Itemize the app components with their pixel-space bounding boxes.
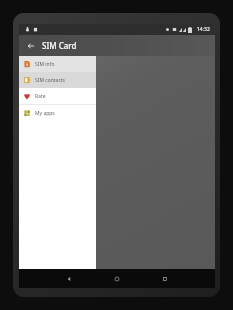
staticText: Rate — [35, 93, 46, 100]
button[interactable]: My apps — [19, 105, 96, 121]
button[interactable]: Rate — [19, 88, 96, 104]
button[interactable]: Back — [53, 269, 85, 288]
staticText: My apps — [35, 110, 55, 117]
button[interactable]: Recent apps — [149, 269, 181, 288]
button[interactable]: SIM contacts — [19, 72, 96, 88]
staticText: SIM Card — [42, 40, 77, 51]
button[interactable]: Navigate up — [23, 38, 39, 54]
staticText: SIM info — [35, 61, 55, 68]
button[interactable]: SIM info — [19, 56, 96, 72]
button[interactable]: Home — [101, 269, 133, 288]
staticText: SIM contacts — [35, 77, 66, 84]
staticText: 14:32 — [197, 26, 210, 33]
